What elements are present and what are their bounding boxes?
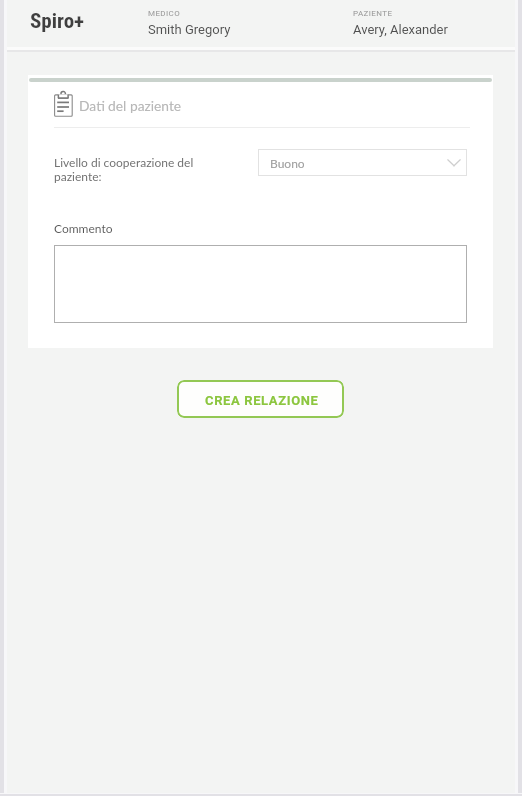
staticText: CREA RELAZIONE: [205, 393, 319, 408]
staticText: Buono: [270, 156, 305, 170]
staticText: MEDICO: [148, 9, 181, 18]
other: Apri elenco: [447, 159, 461, 167]
staticText: Smith Gregory: [148, 22, 231, 37]
staticText: Dati del paziente: [79, 97, 182, 114]
button[interactable]: [54, 245, 467, 323]
staticText: Livello di cooperazione del paziente:: [54, 155, 194, 183]
staticText: Spiro+: [30, 9, 85, 34]
staticText: Avery, Alexander: [353, 22, 448, 37]
staticText: PAZIENTE: [353, 9, 393, 18]
button[interactable]: Buono: [258, 149, 467, 176]
button[interactable]: CREA RELAZIONE: [177, 380, 344, 418]
staticText: Commento: [54, 221, 113, 235]
